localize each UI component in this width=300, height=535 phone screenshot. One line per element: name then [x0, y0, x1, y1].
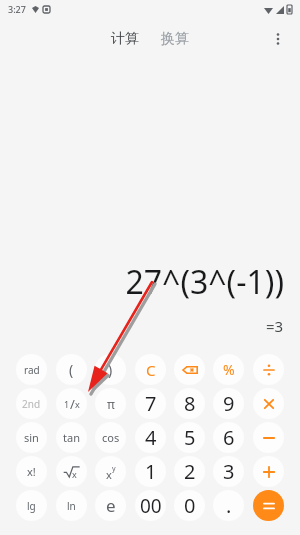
staticText: x	[72, 468, 77, 480]
button[interactable]: .	[213, 490, 244, 521]
button[interactable]: 2nd	[16, 388, 47, 419]
button[interactable]: Equals	[253, 490, 284, 521]
button[interactable]: 0	[174, 490, 205, 521]
button[interactable]: sin	[16, 422, 47, 453]
staticText: 8	[184, 390, 196, 417]
staticText: 0	[184, 492, 196, 519]
staticText: 2nd	[22, 397, 41, 411]
button[interactable]: 7	[135, 388, 166, 419]
button[interactable]: (	[56, 354, 87, 385]
staticText: x	[75, 398, 80, 410]
button[interactable]: Power	[95, 456, 126, 487]
staticText: x	[106, 467, 112, 482]
button[interactable]: Backspace	[174, 354, 205, 385]
staticText: ln	[67, 499, 76, 513]
button[interactable]: Reciprocal	[56, 388, 87, 419]
staticText: 3:27	[8, 3, 26, 15]
staticText: .	[226, 492, 232, 519]
staticText: (	[69, 360, 74, 379]
button[interactable]: Multiply	[253, 388, 284, 419]
button[interactable]: 1	[135, 456, 166, 487]
button[interactable]: %	[213, 354, 244, 385]
staticText: C	[146, 360, 156, 380]
staticText: 9	[223, 390, 235, 417]
button[interactable]: 2	[174, 456, 205, 487]
button[interactable]: Subtract	[253, 422, 284, 453]
button[interactable]: 计算	[105, 26, 145, 52]
button[interactable]: 8	[174, 388, 205, 419]
staticText: 换算	[161, 30, 189, 48]
button[interactable]: rad	[16, 354, 47, 385]
button[interactable]: More options	[262, 23, 294, 55]
staticText: =3	[266, 316, 284, 336]
button[interactable]: cos	[95, 422, 126, 453]
staticText: π	[107, 396, 115, 412]
staticText: cos	[102, 430, 120, 445]
button[interactable]: 3	[213, 456, 244, 487]
button[interactable]: 6	[213, 422, 244, 453]
staticText: sin	[24, 430, 39, 445]
button[interactable]: 换算	[155, 26, 195, 52]
staticText: lg	[27, 499, 36, 513]
staticText: 6	[223, 424, 235, 451]
staticText: 1	[64, 398, 70, 410]
button[interactable]: )	[95, 354, 126, 385]
staticText: e	[106, 494, 116, 517]
button[interactable]: 00	[135, 490, 166, 521]
button[interactable]: Add	[253, 456, 284, 487]
staticText: /	[70, 395, 75, 413]
staticText: 计算	[111, 30, 139, 48]
staticText: %	[223, 360, 235, 379]
staticText: 3	[223, 458, 235, 485]
button[interactable]: 4	[135, 422, 166, 453]
staticText: rad	[24, 363, 40, 377]
staticText: y	[112, 464, 116, 474]
staticText: 4	[145, 424, 157, 451]
button[interactable]: π	[95, 388, 126, 419]
staticText: 27^(3^(-1))	[125, 260, 284, 304]
staticText: 2	[184, 458, 196, 485]
staticText: 7	[145, 390, 157, 417]
button[interactable]: x!	[16, 456, 47, 487]
button[interactable]: ln	[56, 490, 87, 521]
button[interactable]: lg	[16, 490, 47, 521]
staticText: x!	[27, 464, 36, 479]
button[interactable]: 5	[174, 422, 205, 453]
button[interactable]: Square root	[56, 456, 87, 487]
button[interactable]: tan	[56, 422, 87, 453]
staticText: 5	[184, 424, 196, 451]
button[interactable]: 9	[213, 388, 244, 419]
button[interactable]: Divide	[253, 354, 284, 385]
staticText: )	[108, 360, 113, 379]
staticText: 1	[145, 458, 157, 485]
button[interactable]: e	[95, 490, 126, 521]
staticText: tan	[63, 430, 80, 445]
button[interactable]: C	[135, 354, 166, 385]
staticText: 00	[140, 493, 162, 519]
